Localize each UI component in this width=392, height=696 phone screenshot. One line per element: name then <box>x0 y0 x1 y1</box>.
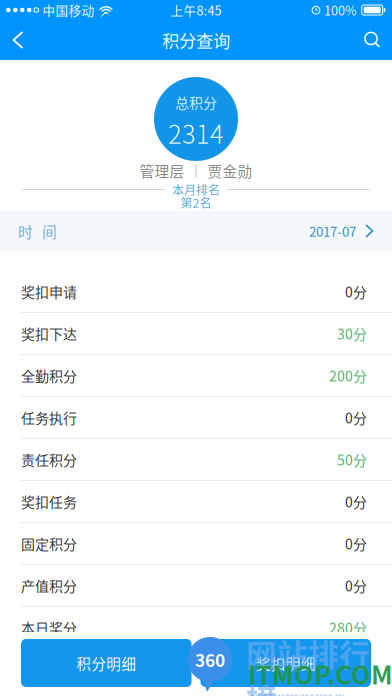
button[interactable]: 搜索 <box>352 20 392 60</box>
staticText: 0分 <box>345 491 367 512</box>
staticText: 奖扣明细 <box>256 652 316 674</box>
staticText: 0分 <box>345 407 367 428</box>
staticText: 任务执行 <box>21 407 77 428</box>
staticText: 本月排名 <box>172 181 220 198</box>
staticText: 上午8:45 <box>170 1 221 19</box>
staticText: 0分 <box>345 533 367 554</box>
staticText: 全勤积分 <box>21 365 77 386</box>
staticText: 积分查询 <box>162 27 230 53</box>
staticText: 管理层 <box>139 160 184 181</box>
staticText: 2017-07 <box>309 221 356 241</box>
staticText: 奖扣申请 <box>21 281 77 302</box>
staticText: 200分 <box>329 365 367 386</box>
staticText: 间 <box>42 220 57 242</box>
staticText: 网站排行榜 <box>246 631 370 696</box>
button[interactable]: 积分明细 <box>21 639 191 687</box>
staticText: 30分 <box>337 323 367 344</box>
staticText: 360 <box>195 647 225 672</box>
staticText: 本日奖分 <box>21 617 77 638</box>
button[interactable]: 返回 <box>0 20 36 60</box>
button[interactable]: 奖扣明细 <box>200 639 371 687</box>
staticText: WANGZHANPAIHANGBANG.CN <box>248 692 344 696</box>
staticText: 贾金勋 <box>207 160 252 181</box>
staticText: 中国移动 <box>42 1 94 19</box>
staticText: 280分 <box>329 617 367 638</box>
button[interactable]: 时 <box>0 211 392 251</box>
staticText: 奖扣下达 <box>21 323 77 344</box>
staticText: 固定积分 <box>21 533 77 554</box>
staticText: 0分 <box>345 575 367 596</box>
staticText: 总积分 <box>175 92 217 112</box>
staticText: 责任积分 <box>21 449 77 470</box>
staticText: 第2名 <box>180 194 211 211</box>
staticText: 积分明细 <box>76 652 136 674</box>
staticText: 时 <box>18 220 33 242</box>
staticText: ITMOP.COM <box>248 655 392 692</box>
staticText: 2314 <box>168 114 224 151</box>
staticText: 产值积分 <box>21 575 77 596</box>
staticText: 0分 <box>345 281 367 302</box>
staticText: 50分 <box>337 449 367 470</box>
staticText: 100% <box>324 1 357 19</box>
staticText: 奖扣任务 <box>21 491 77 512</box>
